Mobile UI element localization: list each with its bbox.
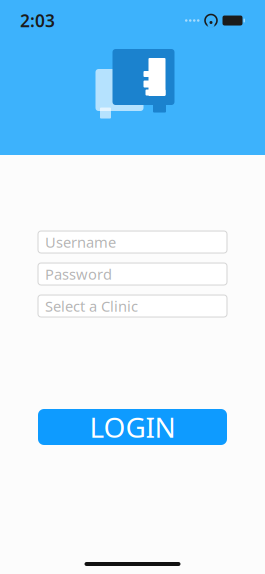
button[interactable]: Password [38, 263, 227, 285]
staticText: Username [45, 232, 116, 252]
staticText: Password [45, 264, 112, 284]
button[interactable]: Select a Clinic [38, 295, 227, 317]
staticText: LOGIN [89, 408, 175, 446]
staticText: 2:03 [20, 9, 55, 32]
button[interactable]: Username [38, 231, 227, 253]
button[interactable]: LOGIN [38, 409, 227, 445]
staticText: Select a Clinic [45, 296, 138, 316]
